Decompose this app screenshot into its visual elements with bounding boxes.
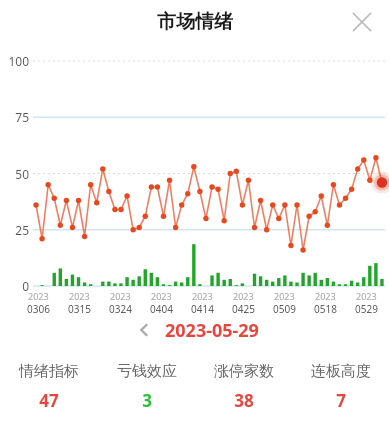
staticText: 2023 (28, 290, 49, 302)
staticText: 0518 (314, 302, 337, 316)
staticText: 25 (15, 222, 29, 238)
staticText: 亏钱效应 (117, 362, 177, 381)
button[interactable]: 连板高度 (292, 362, 389, 412)
staticText: 47 (39, 389, 59, 412)
staticText: 2023 (110, 290, 131, 302)
staticText: 0315 (68, 302, 91, 316)
staticText: 连板高度 (311, 362, 371, 381)
staticText: 75 (15, 109, 29, 125)
staticText: 100 (8, 53, 29, 69)
staticText: 0414 (191, 302, 214, 316)
staticText: 市场情绪 (157, 10, 233, 34)
button[interactable]: Previous day (131, 317, 157, 343)
button[interactable]: 情绪指标 (0, 362, 98, 412)
staticText: 0509 (273, 302, 296, 316)
staticText: 2023 (356, 290, 377, 302)
staticText: 情绪指标 (19, 362, 79, 381)
staticText: 0529 (355, 302, 378, 316)
staticText: 2023 (315, 290, 336, 302)
staticText: 7 (336, 389, 346, 412)
staticText: 2023 (151, 290, 172, 302)
staticText: 2023-05-29 (165, 318, 259, 343)
staticText: 0425 (232, 302, 255, 316)
button[interactable]: 涨停家数 (195, 362, 292, 412)
staticText: 涨停家数 (214, 362, 274, 381)
button[interactable]: 亏钱效应 (98, 362, 195, 412)
staticText: 2023 (69, 290, 90, 302)
staticText: 0306 (27, 302, 50, 316)
staticText: 2023 (274, 290, 295, 302)
staticText: 2023 (233, 290, 254, 302)
staticText: 0404 (150, 302, 173, 316)
button[interactable]: 2023-05-29 (165, 318, 259, 343)
staticText: 0324 (109, 302, 132, 316)
staticText: 3 (142, 389, 152, 412)
staticText: 38 (234, 389, 254, 412)
staticText: 0 (22, 278, 29, 294)
staticText: 50 (15, 166, 29, 182)
button[interactable]: Close (345, 5, 379, 39)
staticText: 2023 (192, 290, 213, 302)
